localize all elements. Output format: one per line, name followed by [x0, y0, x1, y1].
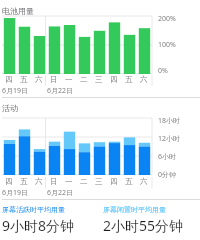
staticText: 六: [140, 75, 148, 84]
staticText: 二: [80, 177, 88, 186]
staticText: 屏幕闲置时平均用量: [103, 205, 166, 214]
staticText: 6月22日: [47, 86, 74, 96]
staticText: 0分钟: [158, 170, 200, 180]
staticText: 六: [35, 75, 43, 84]
staticText: 四: [5, 177, 13, 186]
button[interactable]: 电池用量图表: [0, 16, 200, 74]
staticText: 活动: [2, 103, 18, 113]
staticText: 四: [5, 75, 13, 84]
button[interactable]: 活动图表: [0, 118, 200, 175]
staticText: 二: [80, 75, 88, 84]
staticText: 六: [140, 177, 148, 186]
staticText: 12小时: [158, 134, 200, 144]
staticText: 屏幕活跃时平均用量: [2, 205, 65, 214]
staticText: 六: [35, 177, 43, 186]
staticText: 日: [50, 75, 58, 84]
staticText: 9小时8分钟: [2, 216, 75, 235]
button[interactable]: 屏幕活跃时平均用量: [2, 205, 97, 235]
staticText: 三: [95, 177, 103, 186]
staticText: 四: [110, 75, 118, 84]
staticText: 三: [95, 75, 103, 84]
button[interactable]: 屏幕闲置时平均用量: [103, 205, 198, 235]
staticText: 电池用量: [2, 6, 34, 16]
staticText: 五: [125, 177, 133, 186]
staticText: 2小时55分钟: [103, 216, 184, 235]
staticText: 一: [65, 177, 73, 186]
staticText: 五: [125, 75, 133, 84]
staticText: 200%: [158, 14, 200, 24]
staticText: 四: [110, 177, 118, 186]
staticText: 日: [50, 177, 58, 186]
staticText: 五: [20, 75, 28, 84]
staticText: 五: [20, 177, 28, 186]
staticText: 一: [65, 75, 73, 84]
staticText: 0%: [158, 66, 200, 76]
staticText: 100%: [158, 40, 200, 50]
staticText: 6月19日: [2, 86, 29, 96]
staticText: 6小时: [158, 152, 200, 162]
staticText: 18小时: [158, 116, 200, 126]
staticText: 6月19日: [2, 188, 29, 198]
staticText: 6月22日: [47, 188, 74, 198]
